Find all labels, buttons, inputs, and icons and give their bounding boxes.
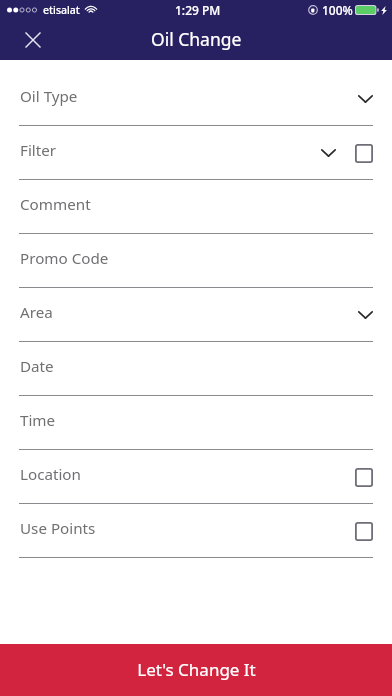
staticText: Oil Type [20, 86, 78, 107]
staticText: Let's Change It [137, 658, 256, 681]
button[interactable]: Close [12, 20, 54, 60]
button[interactable]: Time [0, 396, 392, 450]
staticText: Use Points [20, 518, 96, 539]
button[interactable]: Toggle Location [355, 468, 373, 487]
button[interactable]: Oil Type [0, 72, 392, 126]
staticText: Location [20, 464, 81, 485]
staticText: etisalat [43, 3, 80, 17]
staticText: Filter [20, 140, 57, 161]
button[interactable]: Promo Code [0, 234, 392, 288]
button[interactable]: Toggle Filter [355, 144, 373, 163]
button[interactable]: Expand Area [358, 311, 373, 319]
staticText: 100% [322, 2, 353, 18]
button[interactable]: Let's Change It [0, 644, 392, 696]
button[interactable]: Comment [0, 180, 392, 234]
staticText: 1:29 PM [175, 2, 221, 18]
staticText: Promo Code [20, 248, 109, 269]
button[interactable]: Use Points [0, 504, 392, 558]
staticText: Oil Change [151, 27, 242, 51]
button[interactable]: Expand Oil Type [358, 95, 373, 103]
button[interactable]: Area [0, 288, 392, 342]
staticText: Date [20, 356, 54, 377]
button[interactable]: Toggle Use Points [355, 522, 373, 541]
button[interactable]: Date [0, 342, 392, 396]
staticText: Area [20, 302, 53, 323]
button[interactable]: Filter [0, 126, 392, 180]
staticText: Time [20, 410, 56, 431]
button[interactable]: Location [0, 450, 392, 504]
staticText: Comment [20, 194, 91, 215]
button[interactable]: Expand Filter [321, 149, 336, 157]
